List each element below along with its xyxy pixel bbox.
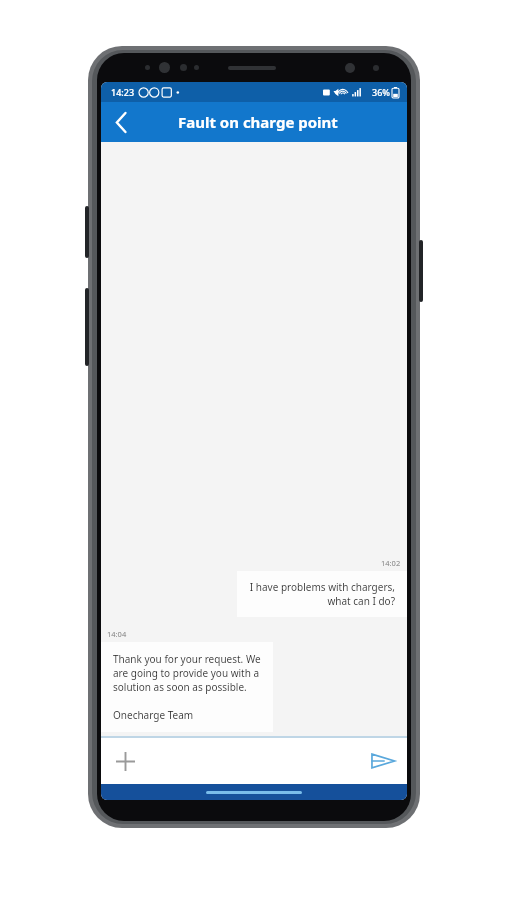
staticText: I have problems with chargers, what can … bbox=[249, 580, 395, 608]
button[interactable]: Send bbox=[363, 741, 403, 781]
staticText: 14:23 bbox=[111, 86, 135, 98]
staticText: 14:04 bbox=[107, 629, 127, 639]
button[interactable]: Thank you for your request. We are going… bbox=[101, 642, 273, 732]
staticText: 14:02 bbox=[381, 558, 401, 568]
staticText: Fault on charge point bbox=[178, 112, 338, 132]
staticText: 36% bbox=[372, 86, 390, 98]
staticText: Thank you for your request. We are going… bbox=[113, 652, 261, 722]
button[interactable]: Back bbox=[101, 102, 141, 142]
button[interactable]: I have problems with chargers, what can … bbox=[237, 571, 407, 617]
button[interactable]: Add attachment bbox=[105, 741, 145, 781]
